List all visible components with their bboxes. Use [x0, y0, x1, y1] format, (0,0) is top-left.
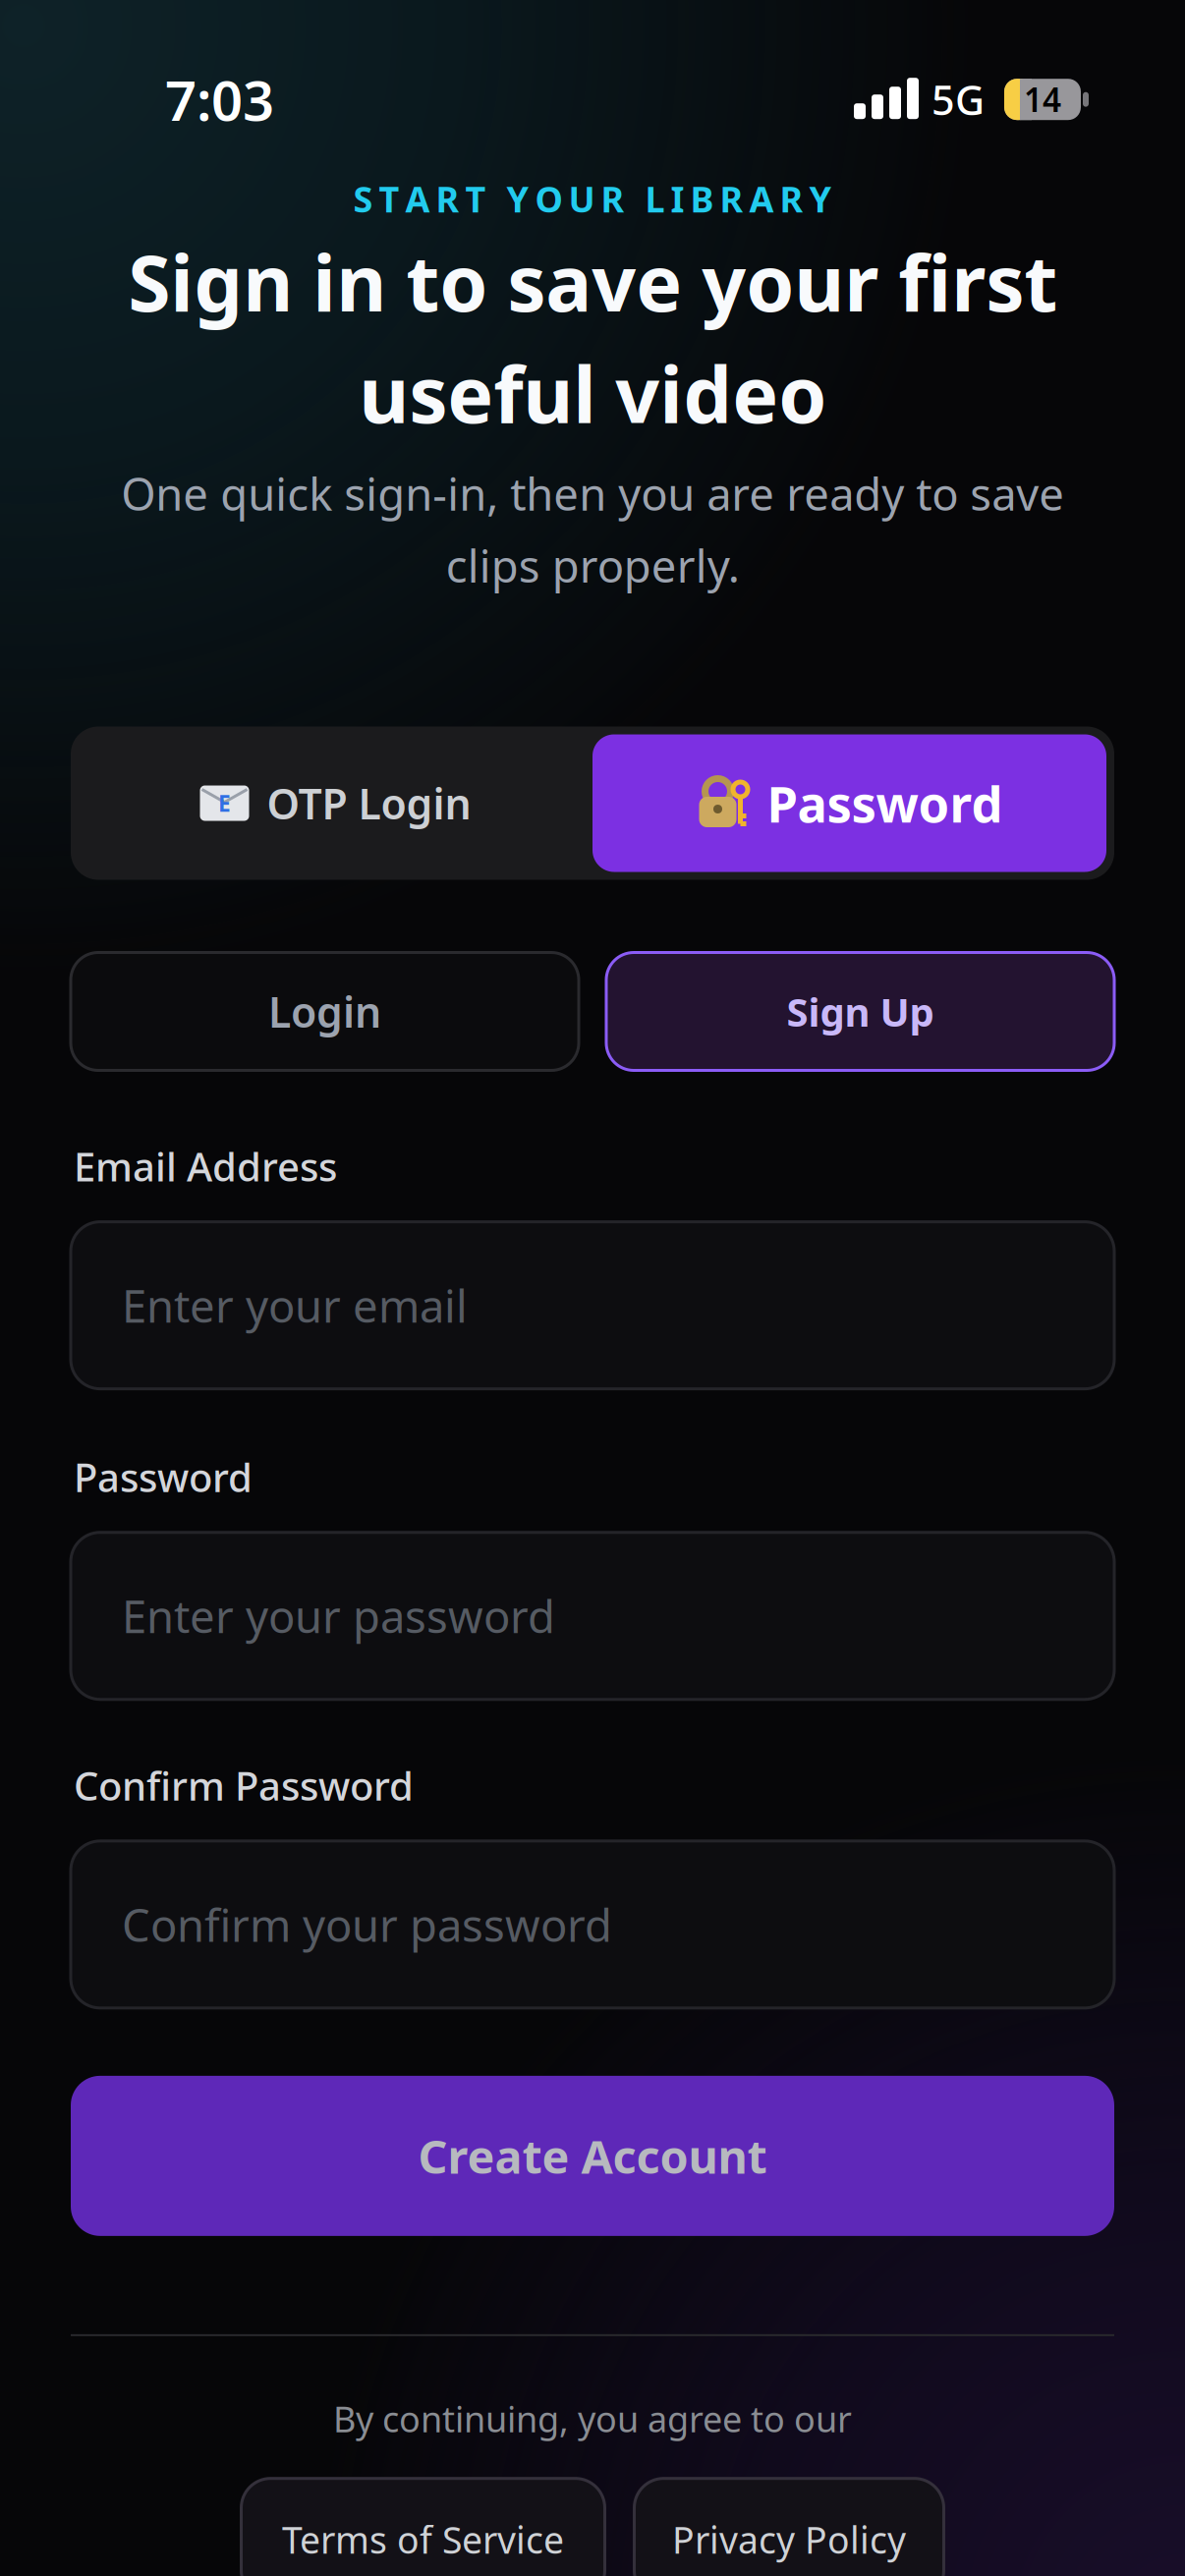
staticText: Enter your password	[122, 1586, 555, 1645]
staticText: S T A R T Y O U R L I B R A R Y	[353, 175, 832, 222]
staticText: Email Address	[74, 1140, 337, 1192]
staticText: Terms of Service	[282, 2515, 564, 2564]
button[interactable]: Sign Up	[606, 952, 1114, 1070]
staticText: 7:03	[165, 63, 274, 136]
button[interactable]: Create Account	[71, 2076, 1114, 2236]
button[interactable]: E	[79, 734, 592, 872]
staticText: Privacy Policy	[672, 2515, 906, 2564]
staticText: 14	[1024, 78, 1061, 121]
staticText: Sign in to save your first useful video	[128, 230, 1057, 444]
button[interactable]: Password	[592, 734, 1106, 872]
staticText: Confirm your password	[122, 1895, 612, 1954]
button[interactable]: Terms of Service	[241, 2478, 605, 2576]
staticText: Sign Up	[787, 985, 934, 1037]
button[interactable]: Privacy Policy	[634, 2478, 944, 2576]
button[interactable]: Enter your email	[71, 1222, 1114, 1389]
staticText: Password	[74, 1451, 253, 1503]
button[interactable]: Login	[71, 952, 579, 1070]
staticText: OTP Login	[267, 775, 471, 831]
staticText: E	[218, 788, 231, 818]
button[interactable]: Enter your password	[71, 1532, 1114, 1699]
staticText: Login	[268, 984, 381, 1039]
staticText: Enter your email	[122, 1276, 468, 1335]
staticText: Confirm Password	[74, 1759, 414, 1811]
staticText: Password	[767, 770, 1003, 836]
staticText: One quick sign-in, then you are ready to…	[121, 464, 1064, 595]
staticText: Create Account	[418, 2125, 767, 2186]
staticText: By continuing, you agree to our	[333, 2395, 852, 2442]
button[interactable]: Confirm your password	[71, 1841, 1114, 2008]
staticText: 5G	[931, 72, 985, 126]
